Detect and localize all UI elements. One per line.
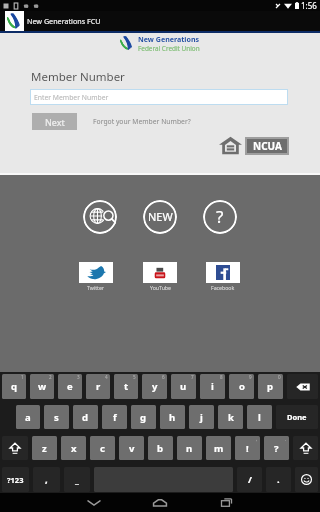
button[interactable]: Back bbox=[61, 493, 127, 512]
staticText: i bbox=[211, 380, 214, 393]
button[interactable]: YouTube bbox=[143, 262, 177, 291]
staticText: o bbox=[239, 380, 245, 393]
button[interactable]: i bbox=[200, 374, 225, 399]
button[interactable]: x bbox=[61, 436, 86, 460]
button[interactable]: l bbox=[247, 405, 272, 429]
button[interactable]: h bbox=[160, 405, 185, 429]
staticText: j bbox=[200, 411, 203, 424]
staticText: 1:56 bbox=[301, 0, 317, 11]
button[interactable]: k bbox=[218, 405, 243, 429]
staticText: / bbox=[248, 473, 252, 486]
button[interactable]: ?123 bbox=[2, 467, 29, 492]
button[interactable]: g bbox=[131, 405, 156, 429]
staticText: z bbox=[42, 442, 47, 455]
staticText: , bbox=[45, 473, 48, 486]
staticText: ? bbox=[274, 442, 279, 455]
staticText: l bbox=[258, 411, 261, 424]
staticText: n bbox=[186, 442, 193, 455]
button[interactable]: New Generations FCU bbox=[0, 11, 320, 31]
button[interactable]: NEW bbox=[143, 200, 177, 234]
staticText: 2 bbox=[49, 374, 52, 380]
staticText: q bbox=[11, 380, 18, 393]
button[interactable]: Backspace bbox=[287, 374, 318, 399]
staticText: t bbox=[124, 380, 129, 393]
staticText: h bbox=[169, 411, 176, 424]
button[interactable]: w bbox=[30, 374, 54, 399]
other: Shift bbox=[300, 442, 312, 454]
staticText: NCUA bbox=[253, 139, 282, 153]
staticText: 6 bbox=[162, 374, 165, 380]
staticText: y bbox=[152, 380, 158, 393]
button[interactable]: v bbox=[119, 436, 144, 460]
button[interactable]: Enter Member Number bbox=[30, 89, 288, 105]
button[interactable]: . bbox=[266, 467, 291, 492]
button[interactable]: m bbox=[206, 436, 231, 460]
button[interactable]: ! bbox=[235, 436, 260, 460]
button[interactable]: o bbox=[229, 374, 254, 399]
staticText: e bbox=[67, 380, 73, 393]
staticText: v bbox=[129, 442, 135, 455]
button[interactable]: Facebook bbox=[206, 262, 240, 291]
button[interactable]: / bbox=[237, 467, 262, 492]
button[interactable]: Emoji bbox=[295, 467, 318, 492]
button[interactable]: Done bbox=[276, 405, 318, 429]
button[interactable]: Recent apps bbox=[193, 493, 259, 512]
staticText: New Generations bbox=[138, 34, 200, 44]
staticText: s bbox=[54, 411, 59, 424]
staticText: g bbox=[140, 411, 147, 424]
staticText: YouTube bbox=[150, 284, 171, 291]
button[interactable]: Home bbox=[127, 493, 193, 512]
button[interactable]: f bbox=[102, 405, 127, 429]
button[interactable]: t bbox=[114, 374, 138, 399]
button[interactable]: n bbox=[177, 436, 202, 460]
staticText: 7 bbox=[191, 374, 194, 380]
staticText: ?123 bbox=[7, 475, 24, 485]
button[interactable]: z bbox=[32, 436, 57, 460]
button[interactable]: c bbox=[90, 436, 115, 460]
button[interactable]: Find Locations bbox=[83, 200, 117, 234]
button[interactable]: ? bbox=[264, 436, 289, 460]
staticText: New Generations FCU bbox=[27, 16, 101, 26]
staticText: c bbox=[100, 442, 105, 455]
button[interactable]: p bbox=[258, 374, 283, 399]
staticText: ! bbox=[246, 442, 249, 455]
button[interactable]: ? bbox=[203, 200, 237, 234]
button[interactable]: Twitter bbox=[79, 262, 113, 291]
staticText: 8 bbox=[220, 374, 223, 380]
staticText: NEW bbox=[148, 209, 173, 224]
button[interactable]: e bbox=[58, 374, 82, 399]
button[interactable]: Shift bbox=[2, 436, 28, 460]
button[interactable]: Next bbox=[32, 113, 77, 130]
staticText: Federal Credit Union bbox=[138, 44, 200, 53]
staticText: Member Number bbox=[31, 69, 125, 85]
staticText: d bbox=[82, 411, 89, 424]
button[interactable]: j bbox=[189, 405, 214, 429]
staticText: 3 bbox=[77, 374, 80, 380]
button[interactable]: _ bbox=[64, 467, 90, 492]
staticText: 4 bbox=[105, 374, 108, 380]
staticText: 9 bbox=[249, 374, 252, 380]
button[interactable]: NCUA bbox=[245, 137, 289, 155]
staticText: p bbox=[267, 380, 274, 393]
button[interactable]: Forgot your Member Number? bbox=[93, 117, 191, 126]
button[interactable]: y bbox=[142, 374, 167, 399]
staticText: Done bbox=[287, 412, 307, 422]
button[interactable]: r bbox=[86, 374, 110, 399]
button[interactable]: u bbox=[171, 374, 196, 399]
staticText: k bbox=[228, 411, 234, 424]
other: Emoji bbox=[301, 474, 312, 485]
staticText: ? bbox=[216, 205, 224, 228]
button[interactable]: b bbox=[148, 436, 173, 460]
button[interactable]: Shift bbox=[293, 436, 318, 460]
button[interactable]: a bbox=[16, 405, 40, 429]
button[interactable]: Equal Housing Lender bbox=[219, 136, 242, 155]
button[interactable]: s bbox=[44, 405, 69, 429]
button[interactable]: q bbox=[2, 374, 26, 399]
staticText: m bbox=[214, 442, 224, 455]
staticText: Facebook bbox=[211, 284, 235, 291]
staticText: 1 bbox=[21, 374, 24, 380]
staticText: w bbox=[38, 380, 47, 393]
button[interactable]: , bbox=[33, 467, 60, 492]
button[interactable]: d bbox=[73, 405, 98, 429]
